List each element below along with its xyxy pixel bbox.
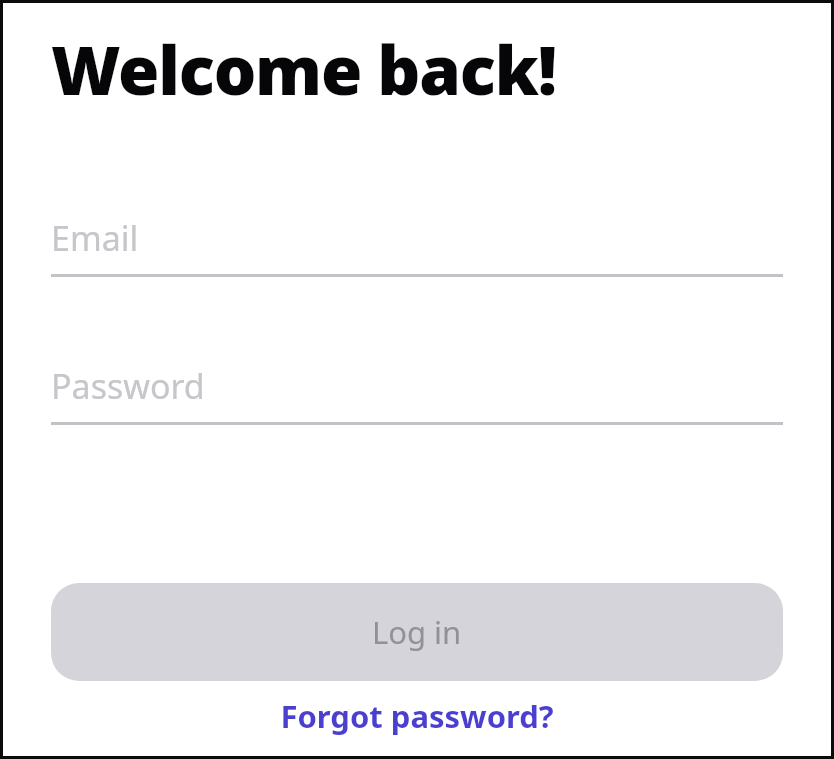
staticText: Email (51, 215, 139, 261)
staticText: Password (51, 363, 205, 409)
staticText: Forgot password? (280, 695, 554, 737)
button[interactable]: Email (51, 212, 783, 277)
staticText: Log in (372, 611, 462, 653)
button[interactable]: Log in (51, 583, 783, 681)
button[interactable]: Password (51, 360, 783, 425)
staticText: Welcome back! (51, 23, 556, 114)
button[interactable]: Forgot password? (51, 691, 783, 741)
